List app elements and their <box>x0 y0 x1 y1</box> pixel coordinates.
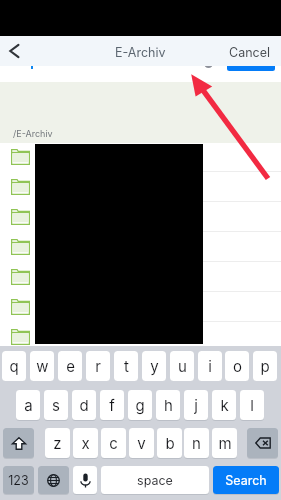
staticText: o <box>233 357 242 375</box>
button[interactable]: space <box>101 466 209 494</box>
staticText: b <box>165 434 175 452</box>
staticText: /E-Archiv <box>13 128 53 139</box>
staticText: x <box>81 434 90 452</box>
button[interactable]: Search <box>213 466 279 494</box>
button[interactable]: Dictate <box>73 466 97 494</box>
button[interactable] <box>0 352 281 382</box>
button[interactable]: g <box>128 390 152 420</box>
staticText: s <box>52 396 60 414</box>
staticText: n <box>192 434 201 452</box>
button[interactable]: d <box>72 390 96 420</box>
staticText: r <box>95 357 101 375</box>
button[interactable]: o <box>225 351 249 381</box>
button[interactable]: u <box>170 351 194 381</box>
button[interactable]: x <box>73 428 98 458</box>
button[interactable]: m <box>212 428 237 458</box>
staticText: v <box>137 434 146 452</box>
staticText: j <box>194 396 198 414</box>
button[interactable]: t <box>114 351 138 381</box>
button[interactable] <box>0 322 281 352</box>
button[interactable]: Backspace <box>247 428 278 458</box>
button[interactable]: 123 <box>3 466 34 494</box>
staticText: Cancel <box>229 45 270 60</box>
staticText: space <box>137 473 173 488</box>
button[interactable]: n <box>184 428 209 458</box>
button[interactable] <box>0 262 281 292</box>
button[interactable]: z <box>45 428 70 458</box>
staticText: z <box>53 434 62 452</box>
staticText: m <box>218 434 232 452</box>
button[interactable]: h <box>156 390 180 420</box>
staticText: i <box>208 357 212 375</box>
button[interactable] <box>227 58 275 71</box>
button[interactable]: j <box>184 390 208 420</box>
staticText: a <box>24 396 33 414</box>
staticText: d <box>79 396 89 414</box>
staticText: e <box>66 357 75 375</box>
button[interactable]: Cancel <box>229 45 270 60</box>
button[interactable]: q <box>2 351 26 381</box>
button[interactable]: k <box>212 390 236 420</box>
staticText: q <box>9 357 19 375</box>
staticText: u <box>178 357 187 375</box>
staticText: E-Archiv <box>115 45 166 60</box>
staticText: w <box>36 357 49 375</box>
staticText: c <box>109 434 118 452</box>
button[interactable]: e <box>58 351 82 381</box>
button[interactable]: p <box>253 351 277 381</box>
staticText: h <box>164 396 173 414</box>
button[interactable]: f <box>100 390 124 420</box>
staticText: 123 <box>8 473 29 488</box>
button[interactable]: Change keyboard <box>38 466 69 494</box>
staticText: f <box>109 396 115 414</box>
button[interactable]: y <box>142 351 166 381</box>
staticText: t <box>124 357 129 375</box>
button[interactable]: r <box>86 351 110 381</box>
staticText: k <box>220 396 229 414</box>
button[interactable] <box>0 172 281 202</box>
button[interactable]: v <box>129 428 154 458</box>
button[interactable]: Shift <box>3 428 34 458</box>
button[interactable]: l <box>240 390 264 420</box>
button[interactable] <box>0 202 281 232</box>
button[interactable]: b <box>157 428 182 458</box>
button[interactable]: Back <box>1 36 27 66</box>
staticText: Search <box>225 473 267 488</box>
button[interactable]: i <box>198 351 222 381</box>
button[interactable] <box>0 232 281 262</box>
button[interactable]: a <box>16 390 40 420</box>
staticText: y <box>150 357 159 375</box>
button[interactable] <box>0 142 281 172</box>
staticText: g <box>135 396 145 414</box>
button[interactable] <box>0 292 281 322</box>
button[interactable]: w <box>30 351 54 381</box>
staticText: l <box>250 396 254 414</box>
button[interactable]: s <box>44 390 68 420</box>
button[interactable]: c <box>101 428 126 458</box>
staticText: p <box>260 357 270 375</box>
